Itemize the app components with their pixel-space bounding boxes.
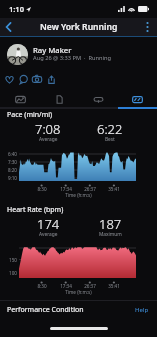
button[interactable]: Map bbox=[0, 91, 40, 107]
staticText: Performance Condition bbox=[7, 305, 84, 315]
staticText: 1:10 bbox=[9, 4, 24, 14]
staticText: 35:41 bbox=[103, 186, 125, 192]
staticText: 8:30 bbox=[31, 186, 53, 192]
button[interactable]: More options bbox=[137, 18, 157, 36]
staticText: Time (h:m:s) bbox=[0, 192, 157, 198]
staticText: 26:37 bbox=[79, 186, 101, 192]
staticText: 187 bbox=[99, 215, 122, 233]
button[interactable]: Profile photo bbox=[7, 44, 28, 65]
staticText: Best bbox=[105, 136, 115, 143]
staticText: 9:10 bbox=[1, 175, 17, 181]
staticText: 7:30 bbox=[1, 159, 17, 165]
staticText: 6:22 bbox=[97, 120, 123, 138]
staticText: 26:37 bbox=[79, 283, 101, 289]
button[interactable]: Back bbox=[0, 18, 17, 36]
staticText: Average bbox=[39, 136, 58, 143]
staticText: Time (h:m:s) bbox=[0, 289, 157, 295]
staticText: 174 bbox=[37, 215, 60, 233]
staticText: 8:30 bbox=[31, 283, 53, 289]
staticText: Aug 26 @ 3:33 PM · Running bbox=[33, 54, 112, 62]
button[interactable]: Performance Condition bbox=[7, 301, 149, 319]
staticText: 17:34 bbox=[55, 186, 77, 192]
staticText: 6:40 bbox=[1, 151, 17, 157]
staticText: Maximum bbox=[99, 231, 122, 238]
staticText: Average bbox=[39, 231, 58, 238]
staticText: 8:20 bbox=[1, 167, 17, 173]
staticText: Heart Rate (bpm) bbox=[7, 205, 64, 215]
staticText: 150 bbox=[1, 257, 17, 263]
staticText: 7:08 bbox=[35, 120, 61, 138]
button[interactable]: Splits bbox=[79, 91, 118, 107]
staticText: 17:34 bbox=[55, 283, 77, 289]
staticText: Ray Maker bbox=[33, 45, 72, 56]
staticText: New York Running bbox=[40, 21, 118, 33]
staticText: Pace (min/mi) bbox=[7, 110, 53, 120]
button[interactable]: Add photo bbox=[30, 70, 44, 88]
button[interactable]: Details bbox=[40, 91, 79, 107]
staticText: 100 bbox=[1, 270, 17, 276]
staticText: 35:41 bbox=[103, 283, 125, 289]
button[interactable]: Share bbox=[44, 70, 58, 88]
staticText: Help bbox=[135, 306, 149, 314]
button[interactable]: Charts bbox=[118, 91, 157, 107]
button[interactable]: Comment bbox=[16, 70, 30, 88]
button[interactable]: Like bbox=[2, 70, 16, 88]
